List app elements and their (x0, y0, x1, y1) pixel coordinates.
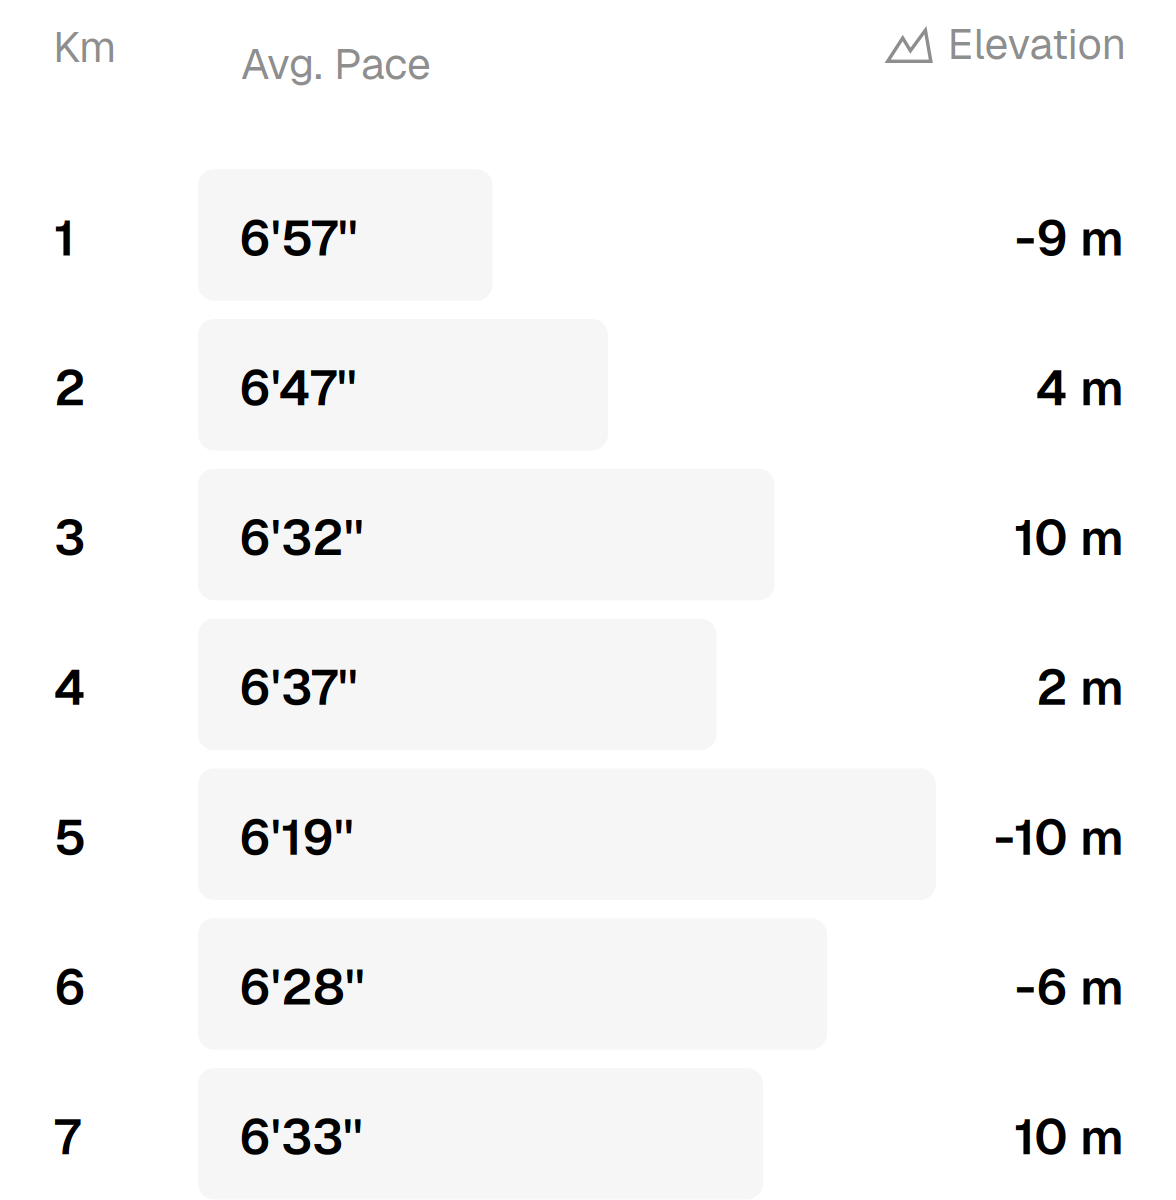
staticText: Km (53, 19, 116, 74)
staticText: 3 (54, 505, 85, 570)
button[interactable]: 4 (0, 619, 1176, 750)
staticText: 10 m (1014, 1105, 1124, 1169)
staticText: 6'28'' (239, 955, 365, 1019)
staticText: 10 m (1014, 505, 1124, 570)
button[interactable]: 3 (0, 469, 1176, 600)
staticText: 6'47'' (239, 356, 357, 420)
staticText: 5 (54, 805, 86, 869)
button[interactable]: 7 (0, 1068, 1176, 1199)
staticText: 6'57'' (239, 206, 358, 270)
staticText: 4 m (1036, 356, 1124, 420)
button[interactable]: 1 (0, 169, 1176, 301)
staticText: 6'19'' (239, 805, 354, 869)
staticText: 6'37'' (239, 655, 358, 719)
staticText: -9 m (1015, 206, 1124, 270)
staticText: Elevation (947, 16, 1126, 71)
button[interactable]: 2 (0, 319, 1176, 450)
staticText: 6'32'' (239, 505, 364, 570)
staticText: Avg. Pace (241, 36, 431, 91)
button[interactable]: 5 (0, 768, 1176, 900)
button[interactable]: 6 (0, 918, 1176, 1050)
staticText: 4 (54, 655, 86, 719)
staticText: 2 (54, 356, 86, 420)
staticText: 1 (54, 206, 75, 270)
staticText: -10 m (994, 805, 1124, 869)
staticText: 2 m (1036, 655, 1124, 719)
staticText: 7 (54, 1105, 81, 1169)
staticText: -6 m (1015, 955, 1124, 1019)
staticText: 6 (54, 955, 86, 1019)
staticText: 6'33'' (239, 1105, 363, 1169)
